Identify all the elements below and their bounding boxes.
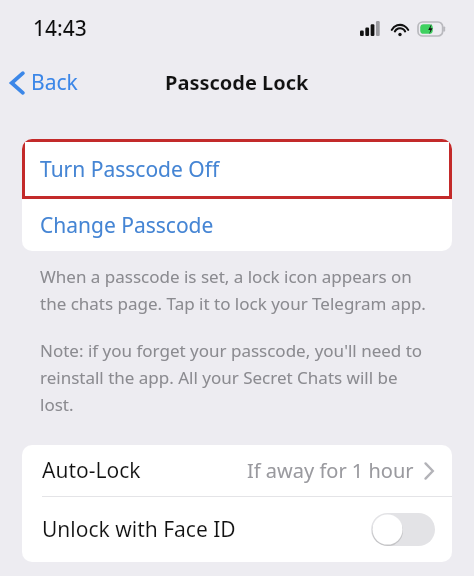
button[interactable]: Unlock with Face ID bbox=[22, 497, 452, 562]
staticText: Passcode Lock bbox=[165, 69, 309, 96]
button[interactable]: Unlock with Face ID toggle, off bbox=[371, 513, 435, 546]
button[interactable]: Auto-Lock bbox=[22, 445, 452, 496]
staticText: 14:43 bbox=[33, 14, 87, 43]
staticText: Back bbox=[31, 68, 78, 97]
staticText: Note: if you forget your passcode, you'l… bbox=[40, 339, 434, 416]
button[interactable]: Turn Passcode Off bbox=[22, 139, 452, 199]
staticText: Unlock with Face ID bbox=[42, 515, 236, 544]
staticText: If away for 1 hour bbox=[247, 457, 414, 484]
staticText: Change Passcode bbox=[40, 211, 214, 240]
button[interactable]: Back bbox=[0, 64, 88, 101]
button[interactable]: Change Passcode bbox=[22, 199, 452, 251]
staticText: Turn Passcode Off bbox=[40, 155, 220, 184]
staticText: When a passcode is set, a lock icon appe… bbox=[40, 265, 434, 315]
staticText: Auto-Lock bbox=[42, 456, 141, 485]
